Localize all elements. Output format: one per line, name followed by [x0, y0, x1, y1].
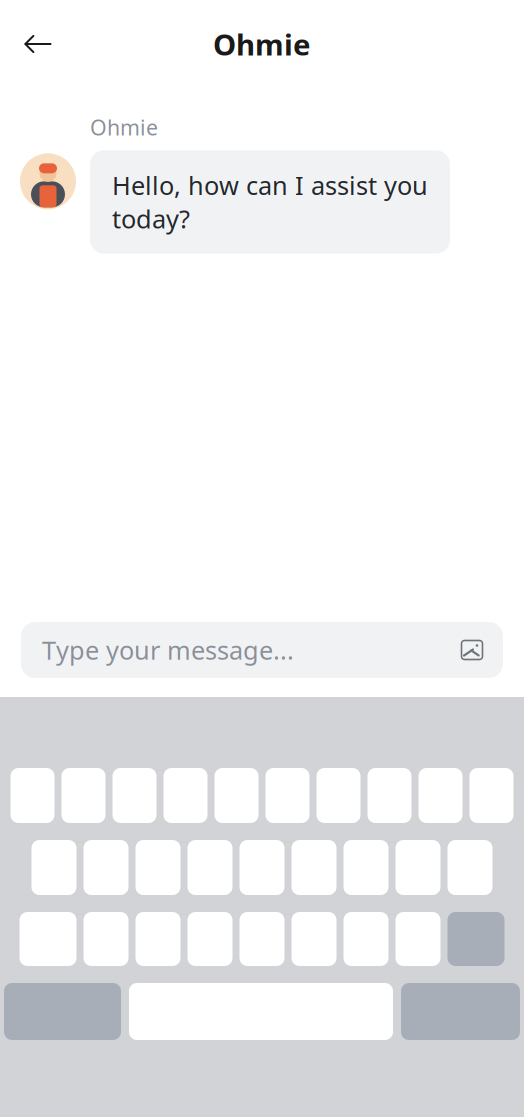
button[interactable]: Key — [61, 768, 105, 823]
button[interactable]: Key — [135, 912, 180, 966]
button[interactable]: Key — [291, 840, 336, 895]
staticText: Type your message... — [42, 633, 294, 667]
button[interactable]: Key — [83, 912, 128, 966]
button[interactable]: Key — [316, 768, 360, 823]
button[interactable]: Key — [447, 912, 504, 966]
button[interactable]: Key — [265, 768, 309, 823]
button[interactable]: Back — [0, 30, 64, 58]
button[interactable]: Key — [395, 840, 440, 895]
button[interactable]: Key — [112, 768, 156, 823]
staticText: Ohmie — [213, 24, 311, 63]
button[interactable]: Key — [239, 840, 284, 895]
button[interactable]: Key — [187, 912, 232, 966]
staticText: Ohmie — [90, 113, 158, 141]
button[interactable]: Key — [4, 983, 121, 1040]
staticText: Hello, how can I assist you today? — [112, 168, 428, 236]
button[interactable]: Key — [19, 912, 76, 966]
button[interactable]: Key — [343, 912, 388, 966]
button[interactable]: Key — [187, 840, 232, 895]
button[interactable]: Key — [239, 912, 284, 966]
button[interactable]: Key — [291, 912, 336, 966]
button[interactable]: Key — [10, 768, 54, 823]
button[interactable]: Key — [395, 912, 440, 966]
button[interactable]: Key — [163, 768, 207, 823]
button[interactable]: Key — [469, 768, 513, 823]
button[interactable]: Key — [343, 840, 388, 895]
button[interactable]: Type your message... — [21, 622, 503, 678]
button[interactable]: Key — [214, 768, 258, 823]
button[interactable]: Key — [447, 840, 492, 895]
button[interactable]: Key — [135, 840, 180, 895]
button[interactable]: Key — [401, 983, 520, 1040]
button[interactable]: Key — [31, 840, 76, 895]
button[interactable]: Key — [83, 840, 128, 895]
button[interactable]: Key — [367, 768, 411, 823]
button[interactable]: Key — [418, 768, 462, 823]
